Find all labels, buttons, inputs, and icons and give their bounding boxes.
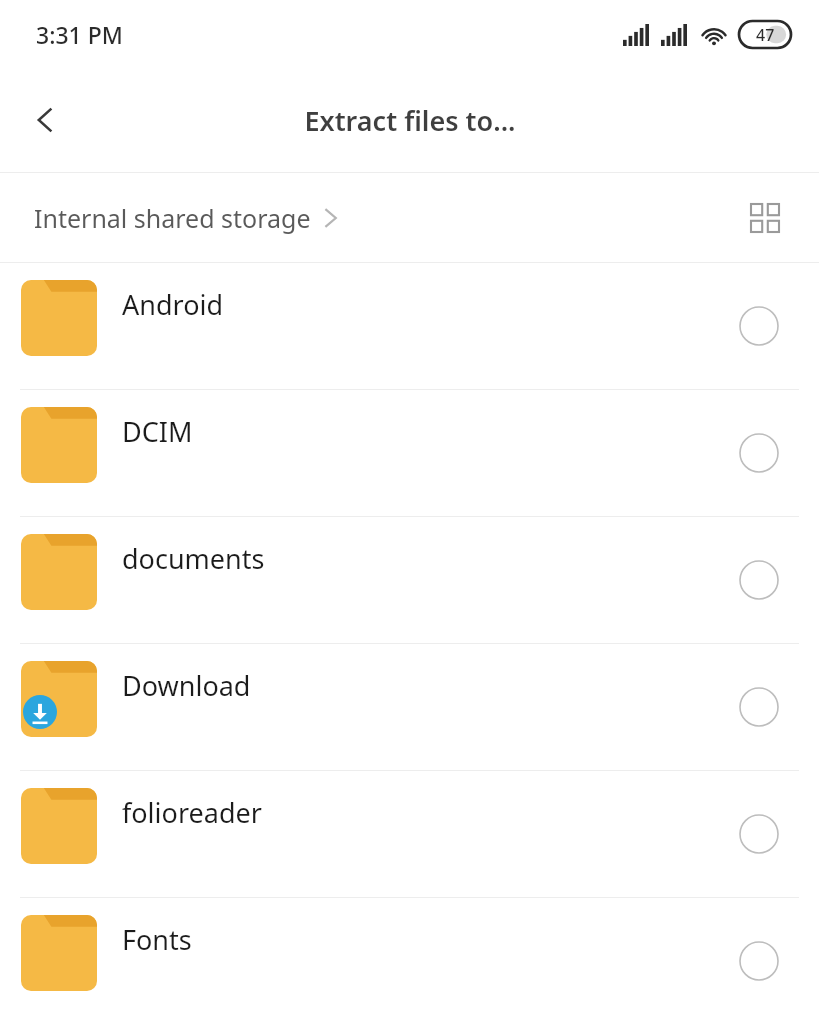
- button[interactable]: folioreader: [0, 771, 819, 897]
- staticText: Download: [122, 667, 251, 704]
- staticText: documents: [122, 540, 265, 577]
- staticText: DCIM: [122, 413, 193, 450]
- staticText: folioreader: [122, 794, 262, 831]
- button[interactable]: Fonts: [0, 898, 819, 1024]
- staticText: 47: [756, 24, 775, 46]
- staticText: Internal shared storage: [34, 201, 311, 235]
- button[interactable]: Back: [10, 84, 82, 156]
- staticText: Extract files to...: [304, 102, 516, 139]
- button[interactable]: Internal shared storage: [34, 201, 341, 235]
- button[interactable]: Grid view: [735, 188, 795, 248]
- button[interactable]: DCIM: [0, 390, 819, 516]
- button[interactable]: Download: [0, 644, 819, 770]
- button[interactable]: documents: [0, 517, 819, 643]
- staticText: Android: [122, 286, 224, 323]
- staticText: 3:31 PM: [36, 19, 123, 50]
- button[interactable]: Android: [0, 263, 819, 389]
- staticText: Fonts: [122, 921, 192, 958]
